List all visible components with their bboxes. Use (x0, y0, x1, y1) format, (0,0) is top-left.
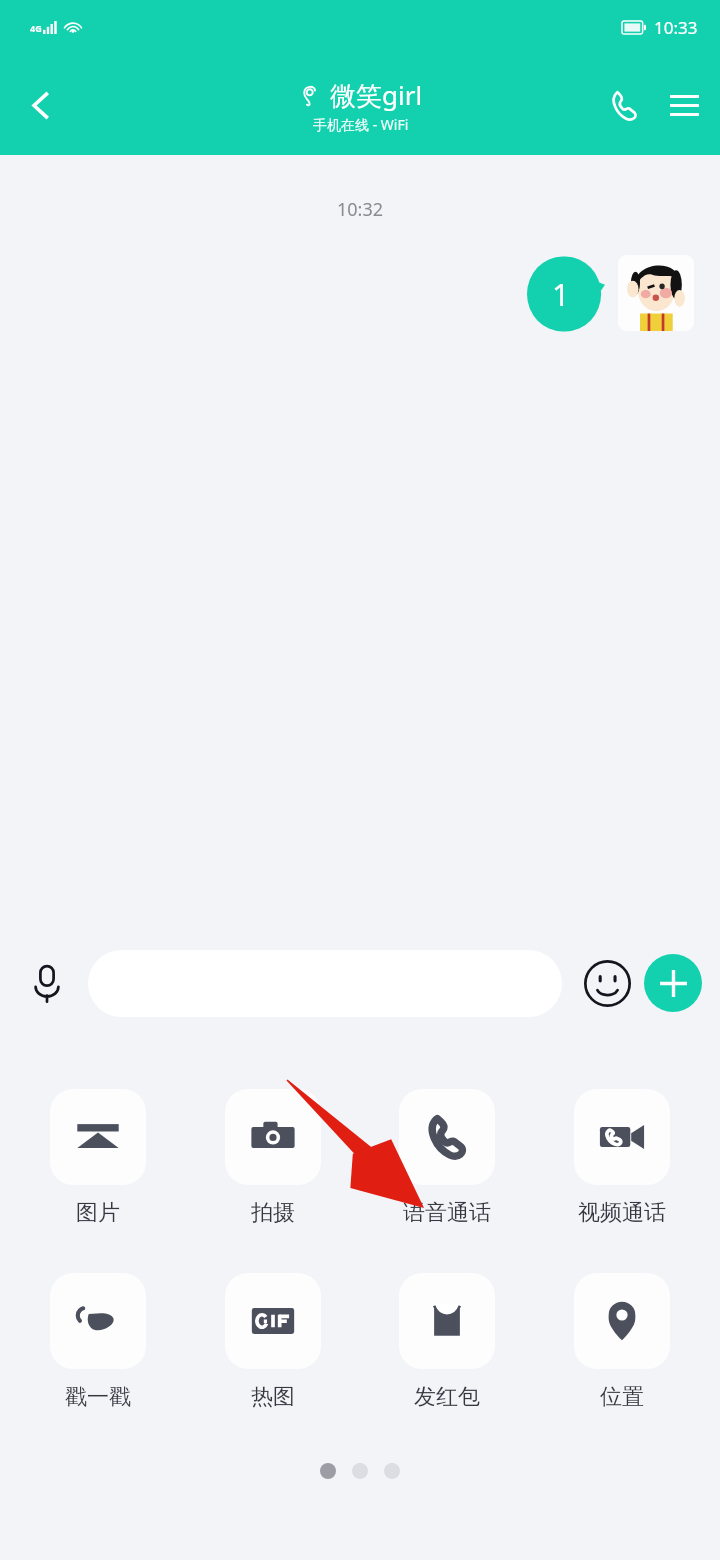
button[interactable]: 发红包 (391, 1273, 503, 1411)
staticText: 4G (30, 22, 42, 34)
button[interactable]: 拍摄 (217, 1089, 329, 1227)
staticText: 视频通话 (578, 1199, 666, 1227)
button[interactable]: Menu (656, 73, 712, 137)
button[interactable]: 图片 (42, 1089, 154, 1227)
staticText: 发红包 (414, 1383, 480, 1411)
button[interactable]: 位置 (566, 1273, 678, 1411)
button[interactable]: Avatar (618, 255, 694, 331)
button[interactable]: 戳一戳 (42, 1273, 154, 1411)
staticText: 手机在线 - WiFi (313, 115, 409, 134)
staticText: 拍摄 (251, 1199, 295, 1227)
button[interactable]: Back (8, 73, 72, 137)
button[interactable]: Voice call (592, 73, 656, 137)
staticText: 戳一戳 (65, 1383, 131, 1411)
staticText: 10:32 (337, 197, 384, 222)
button[interactable]: More options (644, 954, 702, 1012)
button[interactable]: 1 (527, 255, 605, 333)
staticText: 10:33 (654, 16, 698, 39)
staticText: 1 (552, 273, 570, 315)
button[interactable]: 语音通话 (391, 1089, 503, 1227)
button[interactable]: 微笑girl (298, 77, 423, 134)
button[interactable]: Emoji (578, 954, 636, 1012)
button[interactable]: Voice input (18, 954, 76, 1012)
staticText: 微笑girl (330, 77, 423, 113)
button[interactable]: 视频通话 (566, 1089, 678, 1227)
button[interactable]: 热图 (217, 1273, 329, 1411)
staticText: 位置 (600, 1383, 644, 1411)
staticText: 热图 (251, 1383, 295, 1411)
staticText: 语音通话 (403, 1199, 491, 1227)
staticText: 图片 (76, 1199, 120, 1227)
